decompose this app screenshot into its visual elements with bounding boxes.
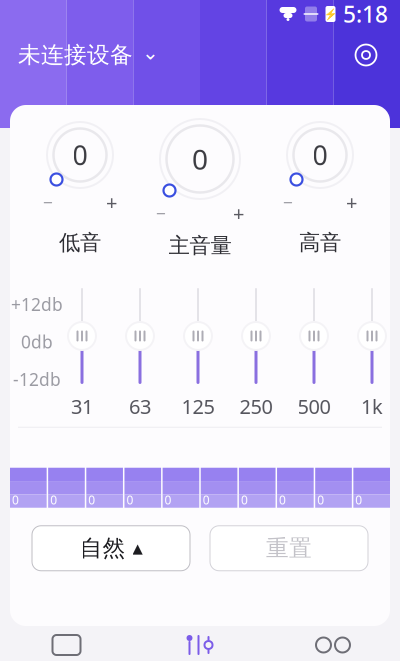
staticText: 低音: [59, 230, 101, 256]
staticText: ⚡: [324, 8, 337, 20]
button[interactable]: 31 hertz band: [65, 288, 99, 384]
staticText: −: [283, 191, 293, 214]
staticText: 0: [72, 137, 87, 173]
staticText: 0: [312, 137, 327, 173]
staticText: 0: [192, 140, 208, 178]
staticText: 0: [165, 492, 172, 508]
staticText: 0: [241, 492, 248, 508]
staticText: -12db: [13, 368, 61, 391]
button[interactable]: Adjust 0: [47, 122, 113, 188]
staticText: 0: [126, 492, 133, 508]
staticText: 63: [129, 393, 151, 420]
button[interactable]: Equalizer: [133, 630, 266, 660]
button[interactable]: Earbuds: [266, 630, 400, 660]
button[interactable]: 重置: [210, 526, 368, 571]
staticText: −: [156, 202, 166, 225]
staticText: 未连接设备: [18, 41, 133, 69]
staticText: −: [43, 191, 53, 214]
staticText: 1k: [361, 393, 383, 420]
staticText: +12db: [11, 293, 63, 316]
staticText: 自然: [79, 534, 125, 562]
button[interactable]: 250 hertz band: [239, 288, 273, 384]
button[interactable]: Adjust 0: [160, 119, 240, 199]
button[interactable]: Device: [0, 630, 133, 660]
staticText: 0: [355, 492, 362, 508]
button[interactable]: 63 hertz band: [123, 288, 157, 384]
button[interactable]: 1k hertz band: [355, 288, 389, 384]
staticText: 0: [88, 492, 95, 508]
staticText: 31: [71, 393, 93, 420]
staticText: +: [346, 189, 357, 216]
staticText: 250: [239, 393, 272, 420]
button[interactable]: 自然: [32, 526, 190, 571]
staticText: 高音: [299, 230, 341, 256]
staticText: 0db: [21, 330, 53, 353]
staticText: 0: [279, 492, 286, 508]
staticText: +: [106, 189, 117, 216]
button[interactable]: 500 hertz band: [297, 288, 331, 384]
staticText: 主音量: [168, 233, 231, 259]
staticText: 重置: [266, 534, 312, 562]
staticText: 5:18: [343, 0, 388, 29]
staticText: 500: [297, 393, 330, 420]
button[interactable]: Settings: [346, 35, 386, 75]
staticText: 0: [203, 492, 210, 508]
staticText: ⌄: [142, 41, 159, 64]
button[interactable]: 未连接设备: [0, 31, 177, 79]
staticText: 0: [12, 492, 19, 508]
staticText: 0: [50, 492, 57, 508]
staticText: 125: [181, 393, 214, 420]
staticText: ▲: [132, 541, 142, 556]
button[interactable]: Adjust 0: [287, 122, 353, 188]
staticText: 0: [317, 492, 324, 508]
button[interactable]: 125 hertz band: [181, 288, 215, 384]
staticText: +: [233, 200, 244, 227]
